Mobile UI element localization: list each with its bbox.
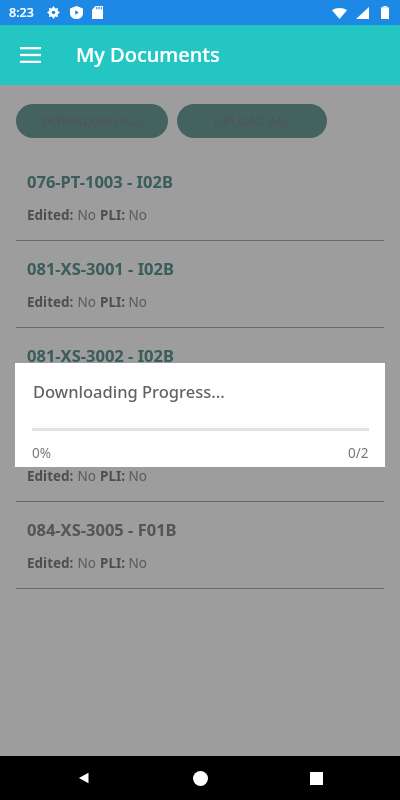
staticText: 081-XS-3001 - I02B: [27, 257, 174, 279]
staticText: No: [74, 206, 100, 224]
staticText: No: [125, 380, 147, 398]
staticText: PLI:: [100, 554, 125, 572]
button[interactable]: 081-XS-3001 - I02B: [0, 241, 400, 328]
staticText: Edited:: [27, 467, 74, 485]
staticText: My Documents: [76, 41, 220, 68]
staticText: Edited:: [27, 380, 74, 398]
staticText: No: [74, 467, 100, 485]
staticText: 076-PT-1003 - I02B: [27, 170, 173, 192]
staticText: No: [74, 293, 100, 311]
staticText: No: [125, 554, 147, 572]
staticText: DOWNLOAD ALL: [41, 112, 144, 130]
button[interactable]: Back: [62, 756, 106, 800]
button[interactable]: UPLOAD ALL: [177, 104, 327, 138]
staticText: 081-XS-3002 - I02B: [27, 344, 174, 366]
button[interactable]: Open navigation menu: [8, 33, 52, 77]
button[interactable]: 081-XS-3002 - I02B: [0, 328, 400, 415]
staticText: Edited:: [27, 206, 74, 224]
staticText: 8:23: [9, 4, 34, 21]
staticText: 084-XS-3005 - F01B: [27, 518, 177, 540]
staticText: No: [74, 554, 100, 572]
staticText: PLI:: [100, 293, 125, 311]
staticText: No: [125, 467, 147, 485]
button[interactable]: 084-XS-3005 - F01B: [0, 502, 400, 589]
staticText: No: [74, 380, 100, 398]
staticText: PLI:: [100, 467, 125, 485]
staticText: No: [125, 206, 147, 224]
staticText: PLI:: [100, 206, 125, 224]
button[interactable]: 076-E3979 - A01A: [0, 415, 400, 502]
staticText: 076-E3979 - A01A: [27, 431, 164, 453]
button[interactable]: 076-PT-1003 - I02B: [0, 154, 400, 241]
button[interactable]: Home: [178, 756, 222, 800]
staticText: Edited:: [27, 293, 74, 311]
staticText: Downloading Progress...: [33, 380, 225, 402]
staticText: UPLOAD ALL: [213, 112, 291, 130]
staticText: 0%: [32, 444, 51, 462]
button[interactable]: Recent apps: [294, 756, 338, 800]
staticText: Edited:: [27, 554, 74, 572]
button[interactable]: DOWNLOAD ALL: [16, 104, 168, 138]
staticText: No: [125, 293, 147, 311]
staticText: PLI:: [100, 380, 125, 398]
staticText: 0/2: [348, 444, 369, 462]
